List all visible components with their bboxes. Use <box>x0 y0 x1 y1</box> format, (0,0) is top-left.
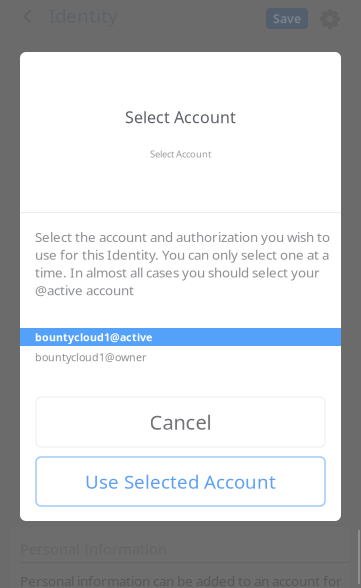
button[interactable]: Use Selected Account <box>36 457 325 506</box>
staticText: Select Account <box>150 148 211 160</box>
staticText: Identity <box>49 3 118 28</box>
button[interactable]: bountycloud1@active <box>20 328 341 346</box>
staticText: Use Selected Account <box>85 469 276 494</box>
button[interactable]: bountycloud1@owner <box>20 348 341 366</box>
staticText: bountycloud1@owner <box>35 350 146 364</box>
button[interactable]: Save <box>266 8 308 29</box>
staticText: Cancel <box>149 409 211 435</box>
staticText: Save <box>273 10 301 26</box>
staticText: Select Account <box>125 106 236 128</box>
button[interactable]: Settings <box>315 4 345 34</box>
button[interactable]: Cancel <box>36 397 325 447</box>
staticText: Select the account and authorization you… <box>35 228 330 299</box>
staticText: bountycloud1@active <box>35 330 152 344</box>
staticText: Personal information can be added to an … <box>20 572 342 588</box>
